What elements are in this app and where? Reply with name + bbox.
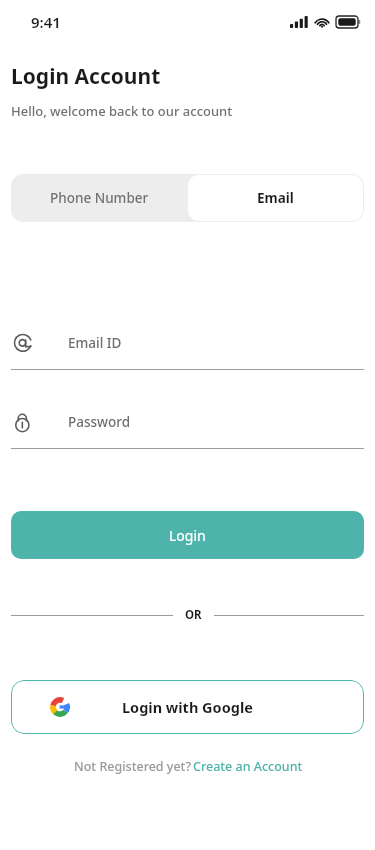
button[interactable]: Create an Account bbox=[193, 758, 303, 775]
staticText: Password bbox=[68, 413, 131, 431]
button[interactable]: Login bbox=[11, 511, 364, 559]
staticText: Login with Google bbox=[122, 697, 253, 717]
staticText: 9:41 bbox=[31, 12, 61, 32]
staticText: Email ID bbox=[68, 334, 122, 352]
button[interactable]: Email ID bbox=[11, 327, 364, 370]
staticText: Login bbox=[169, 526, 206, 545]
staticText: Phone Number bbox=[50, 189, 149, 207]
button[interactable]: Login with Google bbox=[11, 680, 364, 734]
staticText: Hello, welcome back to our account bbox=[11, 102, 233, 120]
staticText: OR bbox=[185, 607, 202, 623]
staticText: Login Account bbox=[11, 62, 161, 91]
button[interactable]: Phone Number bbox=[11, 174, 187, 222]
button[interactable]: Password bbox=[11, 406, 364, 449]
staticText: Email bbox=[257, 189, 294, 207]
button[interactable]: Email bbox=[188, 175, 363, 221]
staticText: Create an Account bbox=[193, 758, 303, 775]
staticText: Not Registered yet? bbox=[72, 758, 193, 775]
